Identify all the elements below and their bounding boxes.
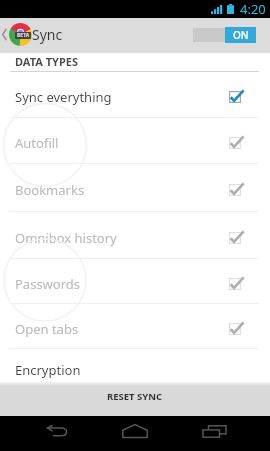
button[interactable]: Recent apps [186, 416, 242, 446]
button[interactable]: Back [29, 415, 85, 445]
staticText: Bookmarks [15, 181, 85, 199]
button[interactable]: Home [107, 416, 163, 446]
staticText: Autofill [15, 134, 59, 152]
button[interactable]: Sync everything [0, 72, 270, 118]
button[interactable]: RESET SYNC [0, 382, 270, 416]
staticText: Omnibox history [15, 229, 117, 247]
button[interactable]: Sync on/off [193, 26, 256, 43]
staticText: Encryption [15, 361, 81, 379]
staticText: Sync [32, 25, 63, 44]
button[interactable]: Encryption [0, 349, 270, 382]
staticText: Sync everything [15, 88, 112, 106]
staticText: 4:20 [240, 0, 266, 18]
staticText: DATA TYPES [15, 54, 79, 69]
button[interactable]: Autofill [0, 118, 270, 164]
staticText: Open tabs [15, 320, 79, 338]
button[interactable]: Passwords [0, 259, 270, 304]
staticText: ON [233, 28, 249, 42]
button[interactable]: Bookmarks [0, 164, 270, 212]
staticText: Passwords [15, 275, 81, 293]
button[interactable]: Open tabs [0, 304, 270, 349]
button[interactable]: Navigate up [0, 18, 63, 51]
staticText: BETA [17, 32, 30, 39]
button[interactable]: Omnibox history [0, 212, 270, 259]
staticText: RESET SYNC [107, 390, 163, 403]
